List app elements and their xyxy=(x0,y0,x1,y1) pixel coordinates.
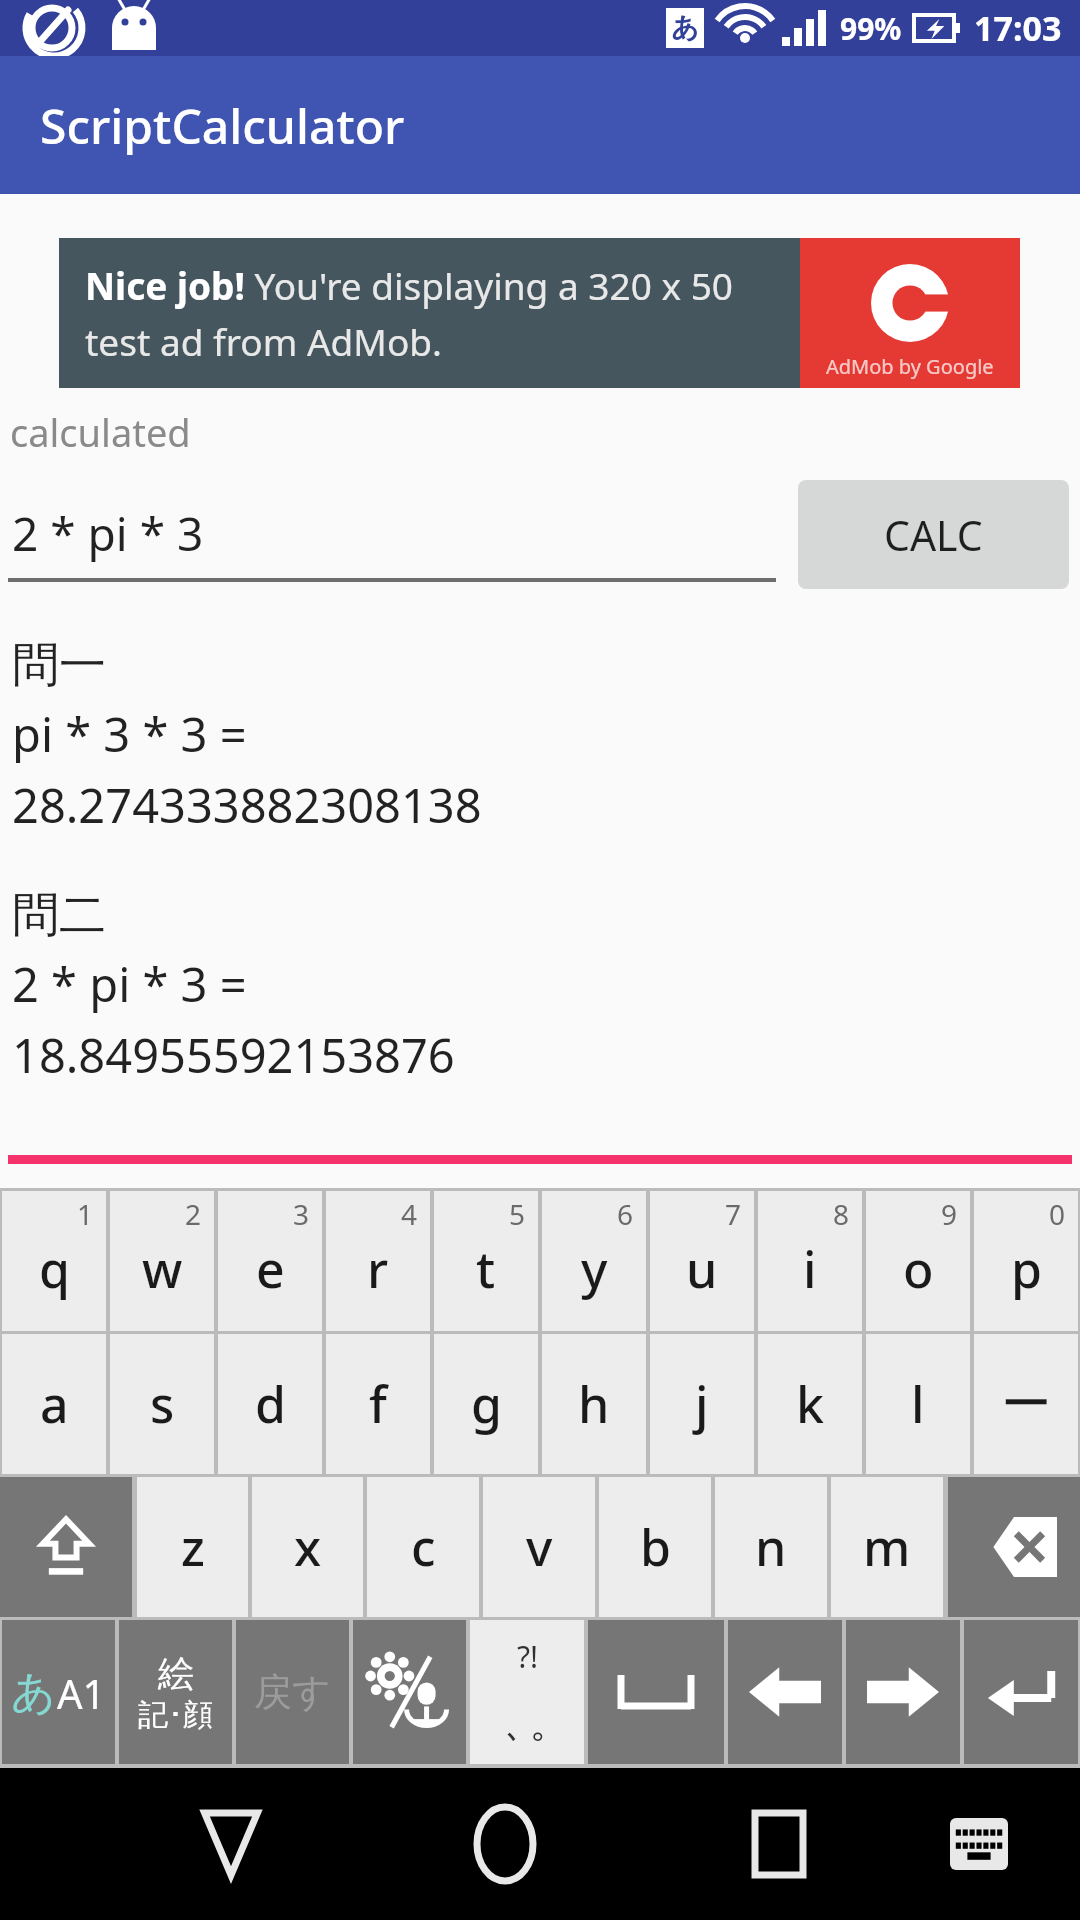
staticText: 6 xyxy=(617,1195,634,1233)
staticText: CALC xyxy=(884,507,983,563)
staticText: o xyxy=(903,1235,934,1303)
staticText: a xyxy=(40,1370,69,1438)
staticText: c xyxy=(411,1513,436,1581)
button[interactable]: Punctuation xyxy=(470,1620,584,1764)
staticText: 2 * pi * 3 xyxy=(12,502,204,565)
staticText: 5 xyxy=(509,1195,526,1233)
button[interactable]: b xyxy=(599,1477,711,1617)
staticText: t xyxy=(476,1235,496,1303)
button[interactable]: g xyxy=(434,1334,538,1474)
button[interactable]: Input mode xyxy=(2,1620,115,1764)
button[interactable]: d xyxy=(218,1334,322,1474)
staticText: s xyxy=(150,1370,175,1438)
staticText: 28.274333882308138 xyxy=(12,773,482,837)
button[interactable]: 6 xyxy=(542,1191,646,1331)
button[interactable]: Undo xyxy=(236,1620,349,1764)
button[interactable]: v xyxy=(483,1477,595,1617)
button[interactable]: k xyxy=(758,1334,862,1474)
button[interactable]: c xyxy=(367,1477,479,1617)
button[interactable]: x xyxy=(252,1477,363,1617)
button[interactable]: Back xyxy=(171,1784,291,1904)
button[interactable]: 7 xyxy=(650,1191,754,1331)
staticText: q xyxy=(39,1235,70,1303)
staticText: 問一 xyxy=(12,636,106,695)
button[interactable]: 4 xyxy=(326,1191,430,1331)
staticText: 1 xyxy=(77,1195,94,1233)
staticText: k xyxy=(796,1370,824,1438)
button[interactable]: Left xyxy=(728,1620,842,1764)
button[interactable]: 8 xyxy=(758,1191,862,1331)
staticText: h xyxy=(578,1370,610,1438)
staticText: i xyxy=(803,1235,817,1303)
button[interactable]: Emoji xyxy=(119,1620,232,1764)
staticText: x xyxy=(294,1513,322,1581)
button[interactable]: m xyxy=(831,1477,943,1617)
button[interactable]: n xyxy=(715,1477,827,1617)
staticText: w xyxy=(142,1235,183,1303)
staticText: n xyxy=(755,1513,787,1581)
staticText: 8 xyxy=(833,1195,850,1233)
button[interactable]: Change keyboard xyxy=(924,1789,1034,1899)
staticText: j xyxy=(695,1370,709,1438)
staticText: 問二 xyxy=(12,886,106,945)
staticText: 2 xyxy=(185,1195,202,1233)
staticText: d xyxy=(255,1370,286,1438)
button[interactable]: z xyxy=(137,1477,248,1617)
staticText: ー xyxy=(1001,1373,1051,1436)
staticText: 18.84955592153876 xyxy=(12,1023,455,1087)
staticText: Nice job! xyxy=(85,260,245,310)
button[interactable]: j xyxy=(650,1334,754,1474)
staticText: 2 * pi * 3 = xyxy=(12,952,247,1016)
button[interactable]: 2 xyxy=(110,1191,214,1331)
staticText: 99% xyxy=(840,8,902,49)
button[interactable]: ー xyxy=(974,1334,1078,1474)
button[interactable]: 9 xyxy=(866,1191,970,1331)
staticText: f xyxy=(369,1370,387,1438)
staticText: y xyxy=(581,1235,608,1303)
button[interactable]: f xyxy=(326,1334,430,1474)
staticText: あ xyxy=(671,11,699,45)
button[interactable]: Space xyxy=(588,1620,724,1764)
staticText: 記･顔 xyxy=(138,1696,213,1734)
button[interactable]: Nice job! xyxy=(59,238,1020,388)
button[interactable]: h xyxy=(542,1334,646,1474)
button[interactable]: Settings and voice xyxy=(353,1620,466,1764)
staticText: g xyxy=(471,1370,502,1438)
button[interactable]: 5 xyxy=(434,1191,538,1331)
staticText: calculated xyxy=(10,406,191,458)
button[interactable]: Home xyxy=(445,1784,565,1904)
button[interactable]: Enter xyxy=(964,1620,1078,1764)
staticText: 17:03 xyxy=(974,5,1062,51)
staticText: u xyxy=(686,1235,718,1303)
button[interactable]: s xyxy=(110,1334,214,1474)
staticText: 3 xyxy=(293,1195,310,1233)
staticText: 4 xyxy=(401,1195,418,1233)
staticText: 0 xyxy=(1049,1195,1066,1233)
button[interactable]: 3 xyxy=(218,1191,322,1331)
button[interactable]: Recents xyxy=(719,1784,839,1904)
staticText: 7 xyxy=(725,1195,742,1233)
staticText: ?! xyxy=(517,1636,539,1677)
staticText: あ xyxy=(11,1665,57,1720)
staticText: v xyxy=(526,1513,553,1581)
staticText: You're displaying a 320 x 50 xyxy=(245,260,733,310)
button[interactable]: Backspace xyxy=(948,1477,1080,1617)
staticText: A1 xyxy=(57,1666,106,1720)
staticText: l xyxy=(911,1370,925,1438)
staticText: ､ ｡ xyxy=(506,1703,549,1749)
staticText: b xyxy=(640,1513,671,1581)
button[interactable]: 0 xyxy=(974,1191,1078,1331)
button[interactable]: 1 xyxy=(2,1191,106,1331)
staticText: e xyxy=(256,1235,285,1303)
staticText: z xyxy=(181,1513,205,1581)
staticText: p xyxy=(1011,1235,1042,1303)
staticText: pi * 3 * 3 = xyxy=(12,702,247,766)
staticText: ScriptCalculator xyxy=(40,93,405,158)
staticText: 戻す xyxy=(254,1668,331,1716)
button[interactable]: CALC xyxy=(798,480,1069,589)
button[interactable]: a xyxy=(2,1334,106,1474)
staticText: m xyxy=(863,1513,911,1581)
button[interactable]: Right xyxy=(846,1620,960,1764)
button[interactable]: Shift xyxy=(0,1477,132,1617)
button[interactable]: l xyxy=(866,1334,970,1474)
